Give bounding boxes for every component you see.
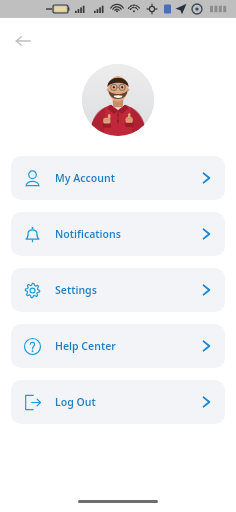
button[interactable]: Help Center: [11, 324, 225, 368]
button[interactable]: My Account: [11, 156, 225, 200]
staticText: Log Out: [55, 395, 96, 409]
staticText: Settings: [55, 283, 97, 297]
button[interactable]: Back: [10, 28, 36, 54]
staticText: My Account: [55, 171, 115, 185]
staticText: Help Center: [55, 339, 116, 353]
button[interactable]: Settings: [11, 268, 225, 312]
button[interactable]: Notifications: [11, 212, 225, 256]
button[interactable]: Log Out: [11, 380, 225, 424]
button[interactable]: Profile photo: [82, 64, 154, 136]
staticText: Notifications: [55, 227, 121, 241]
